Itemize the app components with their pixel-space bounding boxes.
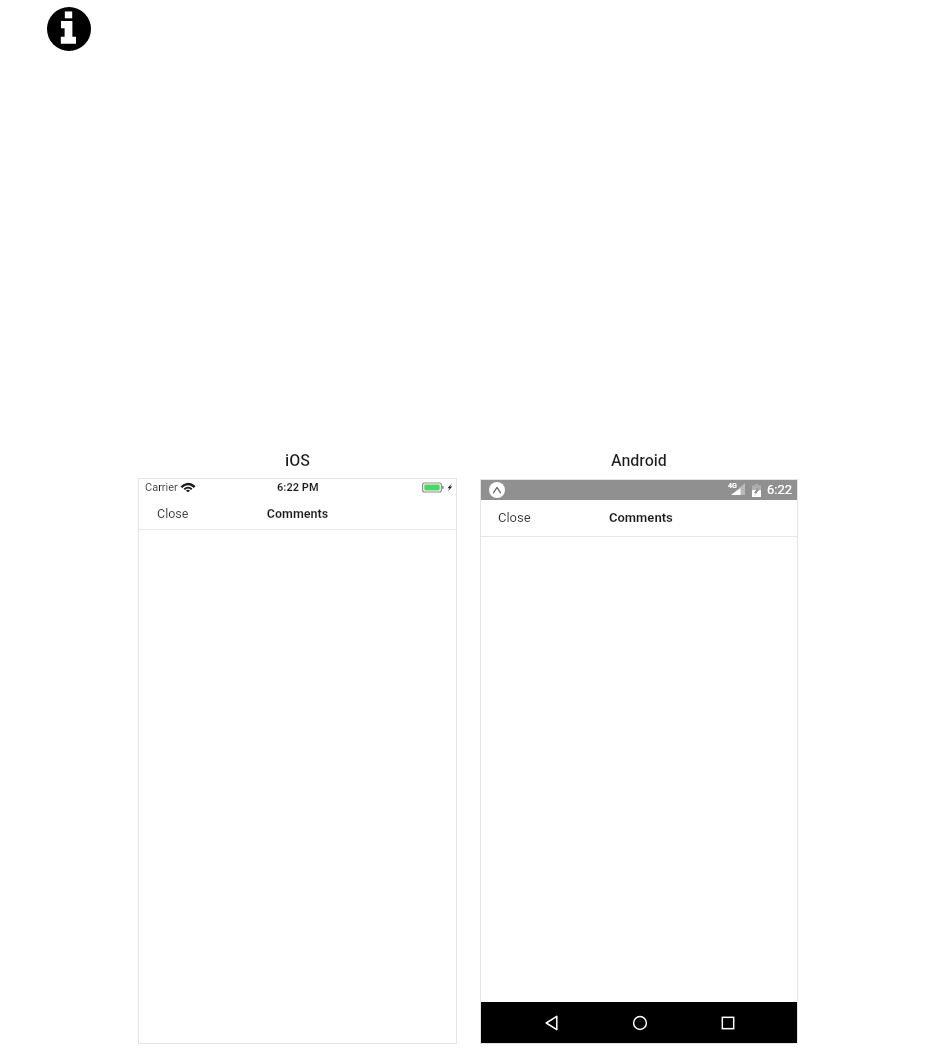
staticText: Comments	[138, 506, 457, 521]
button[interactable]: Information	[47, 7, 91, 51]
button[interactable]: Recent apps	[710, 1005, 746, 1041]
button[interactable]: Home	[622, 1005, 658, 1041]
staticText: 6:22 PM	[277, 481, 319, 494]
staticText: 4G	[728, 482, 737, 490]
staticText: Close	[157, 506, 189, 521]
staticText: Carrier	[145, 481, 178, 494]
button[interactable]: Back	[534, 1005, 570, 1041]
staticText: Comments	[609, 510, 673, 525]
staticText: iOS	[138, 451, 457, 470]
staticText: 6:22	[767, 482, 793, 497]
button[interactable]: Close	[491, 506, 538, 529]
staticText: Android	[480, 451, 798, 470]
button[interactable]: Close	[150, 502, 196, 525]
staticText: Close	[498, 510, 531, 525]
